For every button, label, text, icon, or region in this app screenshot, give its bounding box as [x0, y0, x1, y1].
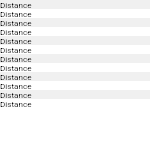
staticText: Distance [0, 27, 32, 36]
staticText: Distance [0, 45, 32, 54]
staticText: Distance [0, 81, 32, 90]
staticText: Distance [0, 36, 32, 45]
staticText: Distance [0, 18, 32, 27]
staticText: Distance [0, 63, 32, 72]
staticText: Distance [0, 54, 32, 63]
staticText: Distance [0, 72, 32, 81]
staticText: Distance [0, 9, 32, 18]
staticText: Distance [0, 99, 32, 108]
staticText: Distance [0, 90, 32, 99]
staticText: Distance [0, 0, 32, 9]
